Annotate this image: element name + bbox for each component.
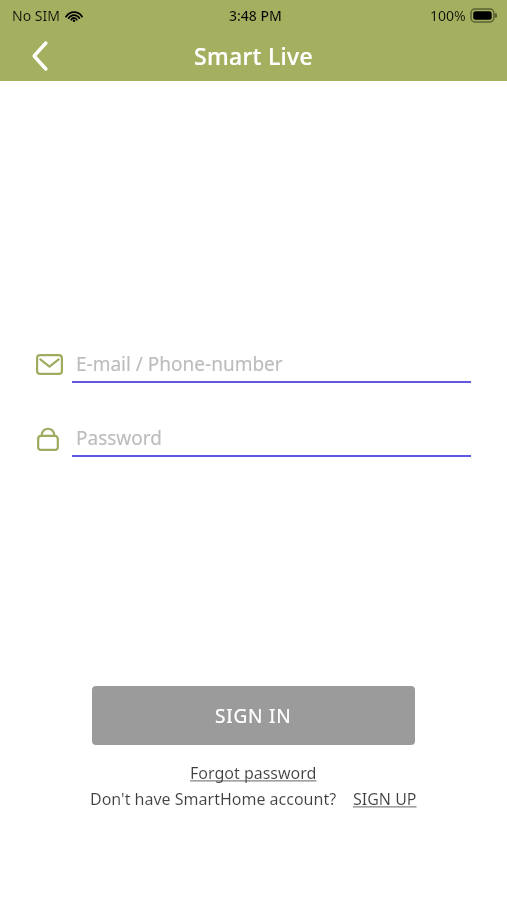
- button[interactable]: E-mail or phone number field: [36, 345, 471, 383]
- staticText: SIGN IN: [215, 703, 292, 729]
- button[interactable]: SIGN IN: [92, 686, 415, 745]
- button[interactable]: Forgot password: [190, 762, 317, 784]
- staticText: Password: [76, 425, 162, 451]
- staticText: No SIM: [12, 6, 60, 25]
- staticText: 3:48 PM: [229, 6, 282, 25]
- staticText: Forgot password: [190, 762, 317, 784]
- staticText: Smart Live: [194, 40, 313, 71]
- staticText: 100%: [430, 6, 466, 25]
- button[interactable]: Password field: [36, 419, 471, 457]
- button[interactable]: Back: [16, 32, 64, 80]
- staticText: E-mail / Phone-number: [76, 351, 283, 377]
- staticText: SIGN UP: [353, 788, 417, 810]
- staticText: Don't have SmartHome account?: [90, 788, 337, 810]
- button[interactable]: SIGN UP: [353, 788, 417, 810]
